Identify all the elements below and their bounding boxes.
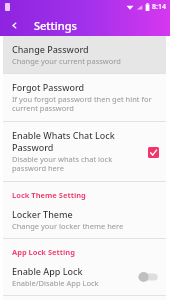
staticText: 8:14 bbox=[152, 2, 166, 12]
staticText: Enable Whats Chat Lock Password bbox=[12, 129, 143, 153]
button[interactable]: Enable App Lock bbox=[3, 258, 166, 295]
staticText: Enable App Lock bbox=[12, 265, 83, 277]
button[interactable]: Change Password bbox=[3, 36, 166, 73]
staticText: Disable your whats chat lock password he… bbox=[12, 154, 143, 174]
button[interactable]: Enable Whats Chat Lock Password bbox=[147, 146, 159, 158]
staticText: Change your current password bbox=[12, 56, 121, 66]
staticText: Forgot Password bbox=[12, 81, 85, 93]
staticText: If you forgot password then get hint for… bbox=[12, 94, 159, 114]
button[interactable]: Enable Whats Chat Lock Password bbox=[3, 122, 166, 181]
button[interactable]: Enable App Lock bbox=[137, 271, 159, 283]
button[interactable]: Forgot Password bbox=[3, 74, 166, 121]
button[interactable]: Back bbox=[7, 18, 21, 32]
staticText: Change Password bbox=[12, 43, 89, 55]
staticText: Enable/Disable App Lock bbox=[12, 278, 99, 288]
staticText: App Lock Setting bbox=[12, 247, 75, 257]
staticText: Change your locker theme here bbox=[12, 221, 124, 231]
staticText: Lock Theme Setting bbox=[12, 190, 86, 200]
staticText: Settings bbox=[34, 18, 77, 33]
staticText: Locker Theme bbox=[12, 208, 73, 220]
button[interactable]: Locker Theme bbox=[3, 201, 166, 238]
